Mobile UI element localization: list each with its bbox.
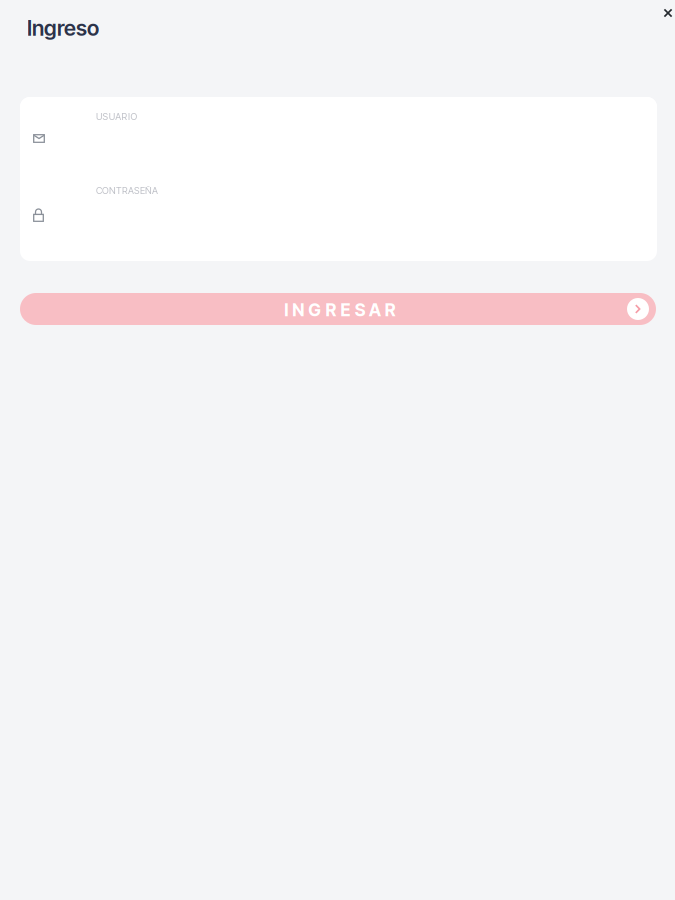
button[interactable]: CONTRASEÑA <box>20 171 657 245</box>
button[interactable]: INGRESAR <box>20 293 656 325</box>
staticText: CONTRASEÑA <box>96 185 158 196</box>
button[interactable]: Close <box>658 3 675 23</box>
button[interactable]: USUARIO <box>20 97 657 171</box>
staticText: USUARIO <box>96 111 137 122</box>
staticText: INGRESAR <box>284 299 396 320</box>
staticText: Ingreso <box>27 15 99 41</box>
